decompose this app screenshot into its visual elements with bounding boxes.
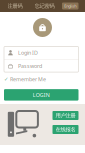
button[interactable]: 注册码 bbox=[3, 0, 27, 12]
staticText: 在线报名 bbox=[55, 126, 75, 133]
button[interactable]: Login ID bbox=[4, 46, 78, 59]
button[interactable]: 在线报名 bbox=[52, 125, 78, 134]
staticText: LOGIN bbox=[33, 91, 50, 98]
staticText: 注册码 bbox=[7, 3, 22, 9]
button[interactable]: 忘记密码 bbox=[32, 0, 56, 12]
button[interactable]: English bbox=[62, 2, 78, 9]
staticText: English bbox=[64, 3, 76, 9]
staticText: Remember Me bbox=[10, 76, 46, 83]
button[interactable]: ✓ bbox=[0, 76, 85, 82]
staticText: 用户注册 bbox=[55, 112, 75, 119]
button[interactable]: LOGIN bbox=[4, 89, 78, 101]
button[interactable]: Password bbox=[4, 60, 78, 72]
staticText: Password bbox=[18, 62, 42, 69]
staticText: 忘记密码 bbox=[34, 3, 54, 9]
staticText: Login ID bbox=[18, 49, 38, 56]
button[interactable]: 用户注册 bbox=[52, 111, 78, 120]
staticText: ✓ bbox=[4, 76, 8, 82]
